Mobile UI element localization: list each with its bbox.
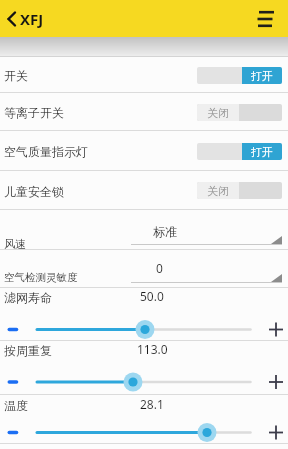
- staticText: 打开: [251, 145, 273, 159]
- button[interactable]: 等离子开关: [0, 93, 288, 131]
- staticText: 空气检测灵敏度: [4, 271, 78, 284]
- staticText: 开关: [4, 68, 28, 83]
- button[interactable]: 空气质量指示灯: [0, 131, 288, 171]
- button[interactable]: 关闭: [197, 104, 282, 121]
- staticText: 温度: [4, 398, 28, 413]
- button[interactable]: 滤网寿命: [0, 288, 288, 341]
- staticText: 关闭: [207, 184, 229, 198]
- staticText: 50.0: [140, 288, 164, 304]
- button[interactable]: 打开: [197, 143, 282, 160]
- button[interactable]: 按周重复: [0, 341, 288, 395]
- staticText: 0: [156, 260, 163, 276]
- staticText: 滤网寿命: [4, 290, 52, 305]
- staticText: 打开: [251, 69, 273, 83]
- button[interactable]: 关闭: [197, 182, 282, 199]
- staticText: 28.1: [140, 396, 164, 412]
- button[interactable]: XFJ: [7, 9, 44, 29]
- staticText: 空气质量指示灯: [4, 144, 88, 159]
- button[interactable]: 开关: [0, 57, 288, 93]
- staticText: 113.0: [137, 341, 168, 357]
- button[interactable]: [257, 10, 275, 28]
- staticText: 等离子开关: [4, 105, 64, 120]
- staticText: 标准: [153, 224, 177, 239]
- staticText: XFJ: [20, 9, 44, 29]
- staticText: 关闭: [207, 106, 229, 120]
- button[interactable]: 温度: [0, 395, 288, 444]
- button[interactable]: 风速: [0, 210, 288, 250]
- button[interactable]: 打开: [197, 67, 282, 84]
- button[interactable]: 儿童安全锁: [0, 171, 288, 210]
- button[interactable]: 空气检测灵敏度: [0, 250, 288, 288]
- staticText: 按周重复: [4, 343, 52, 358]
- staticText: 儿童安全锁: [4, 184, 64, 199]
- staticText: 风速: [4, 237, 26, 251]
